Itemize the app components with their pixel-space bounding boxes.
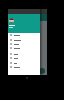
button[interactable]	[8, 56, 40, 60]
button[interactable]: Compose	[39, 68, 45, 74]
button[interactable]	[8, 46, 40, 50]
button[interactable]	[8, 61, 40, 65]
button[interactable]: Profile photo	[9, 18, 14, 23]
button[interactable]	[8, 52, 40, 56]
button[interactable]	[8, 42, 40, 46]
button[interactable]	[8, 33, 40, 37]
button[interactable]	[8, 38, 40, 42]
button[interactable]	[8, 65, 40, 69]
